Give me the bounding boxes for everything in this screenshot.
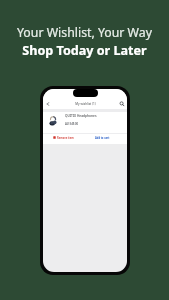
button[interactable]: Search bbox=[118, 100, 126, 108]
staticText: AU $49.00 bbox=[65, 122, 79, 126]
button[interactable]: Remove item bbox=[53, 136, 74, 139]
staticText: QUITIX Headphones bbox=[65, 114, 97, 118]
button[interactable]: Back bbox=[44, 100, 52, 108]
staticText: Your Wishlist, Your Way bbox=[17, 24, 152, 41]
staticText: Shop Today or Later bbox=[22, 42, 147, 59]
staticText: My wishlist (1) bbox=[75, 102, 96, 106]
button[interactable]: Add to cart bbox=[95, 136, 110, 140]
staticText: Remove item bbox=[57, 136, 74, 139]
